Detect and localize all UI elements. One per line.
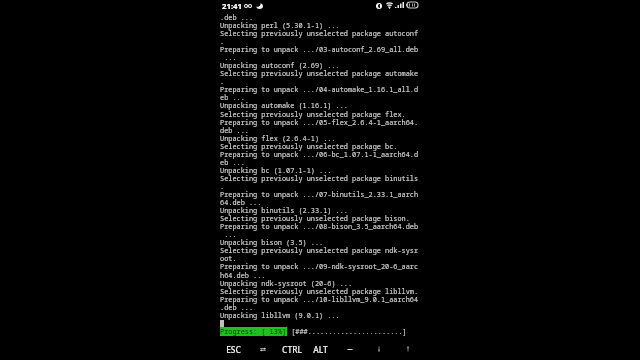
button[interactable] xyxy=(219,13,422,338)
staticText: Selecting previously unselected package … xyxy=(220,69,419,78)
staticText: [###.......................] xyxy=(287,327,407,336)
staticText: Unpacking libllvm (9.0.1) ... xyxy=(220,311,340,320)
staticText: . xyxy=(220,37,225,46)
staticText: Selecting previously unselected package … xyxy=(220,174,419,183)
staticText: Unpacking perl (5.30.1-1) ... xyxy=(220,21,340,30)
staticText: Selecting previously unselected package … xyxy=(220,214,410,223)
staticText: Unpacking autoconf (2.69) ... xyxy=(220,61,340,70)
staticText: CTRL xyxy=(282,344,302,355)
staticText: Preparing to unpack .../10-libllvm_9.0.1… xyxy=(220,295,419,304)
staticText: Preparing to unpack .../04-automake_1.16… xyxy=(220,85,419,94)
staticText: h64.deb ... xyxy=(220,271,266,280)
staticText: Preparing to unpack .../09-ndk-sysroot_2… xyxy=(220,262,419,271)
button[interactable]: Up xyxy=(393,338,422,360)
button[interactable]: ALT xyxy=(306,338,335,360)
staticText: Selecting previously unselected package … xyxy=(220,287,419,296)
staticText: Preparing to unpack .../03-autoconf_2.69… xyxy=(220,45,419,54)
staticText: Selecting previously unselected package … xyxy=(220,110,406,119)
staticText: Preparing to unpack .../05-flex_2.6.4-1_… xyxy=(220,118,419,127)
staticText: Preparing to unpack .../08-bison_3.5_aar… xyxy=(220,222,419,231)
staticText: . xyxy=(220,182,225,191)
button[interactable]: Tab xyxy=(248,338,277,360)
staticText: oot. xyxy=(220,254,237,263)
staticText: Selecting previously unselected package … xyxy=(220,246,419,255)
staticText: 21:41 xyxy=(222,1,243,12)
staticText: Selecting previously unselected package … xyxy=(220,29,419,38)
button[interactable]: CTRL xyxy=(277,338,306,360)
button[interactable]: Minus xyxy=(335,338,364,360)
staticText: . xyxy=(220,77,225,86)
staticText: Unpacking flex (2.6.4-1) ... xyxy=(220,134,336,143)
staticText: ESC xyxy=(226,344,241,355)
staticText: eb ... xyxy=(220,158,245,167)
staticText: Preparing to unpack .../07-binutils_2.33… xyxy=(220,190,419,199)
staticText: ... xyxy=(220,53,237,62)
staticText: Unpacking bc (1.07.1-1) ... xyxy=(220,166,332,175)
staticText: .deb ... xyxy=(220,303,254,312)
staticText: eb ... xyxy=(220,93,245,102)
staticText: Unpacking automake (1.16.1) ... xyxy=(220,101,348,110)
staticText: Unpacking bison (3.5) ... xyxy=(220,238,324,247)
button[interactable]: Down xyxy=(364,338,393,360)
staticText: 64.deb ... xyxy=(220,198,262,207)
staticText: Preparing to unpack .../06-bc_1.07.1-1_a… xyxy=(220,150,419,159)
staticText: Selecting previously unselected package … xyxy=(220,142,398,151)
staticText: .deb ... xyxy=(220,13,254,22)
staticText: Progress: [ 13%] xyxy=(220,327,287,336)
button[interactable]: ESC xyxy=(219,338,248,360)
staticText: ALT xyxy=(313,344,328,355)
staticText: ... xyxy=(220,230,237,239)
staticText: deb ... xyxy=(220,126,249,135)
staticText: Unpacking ndk-sysroot (20-6) ... xyxy=(220,279,353,288)
staticText: Unpacking binutils (2.33.1) ... xyxy=(220,206,348,215)
